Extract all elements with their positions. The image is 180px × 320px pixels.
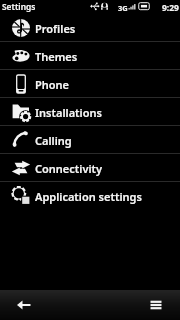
button[interactable]: Installations <box>0 98 180 126</box>
staticText: 9:29 <box>162 2 179 14</box>
staticText: Application settings <box>35 189 142 204</box>
staticText: Connectivity <box>35 161 103 176</box>
button[interactable]: Menu <box>132 290 180 320</box>
staticText: Phone <box>35 77 70 92</box>
staticText: Settings <box>2 1 36 12</box>
button[interactable]: Phone <box>0 70 180 98</box>
staticText: Installations <box>35 105 102 120</box>
button[interactable]: Themes <box>0 42 180 70</box>
staticText: Themes <box>35 49 78 64</box>
button[interactable]: Connectivity <box>0 154 180 182</box>
button[interactable]: Back <box>0 290 48 320</box>
button[interactable]: Application settings <box>0 182 180 210</box>
staticText: 3G <box>118 3 128 13</box>
button[interactable]: Calling <box>0 126 180 154</box>
staticText: Profiles <box>35 21 76 36</box>
staticText: Calling <box>35 133 72 148</box>
button[interactable]: Profiles <box>0 14 180 42</box>
